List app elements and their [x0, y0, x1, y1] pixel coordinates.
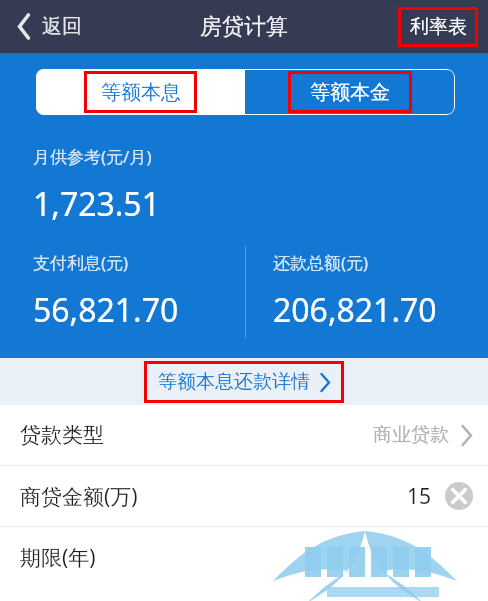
staticText: 返回 — [42, 14, 82, 39]
staticText: 等额本金 — [310, 80, 390, 105]
staticText: 等额本息还款详情 — [158, 370, 310, 394]
staticText: 15 — [407, 482, 432, 511]
staticText: 房贷计算 — [200, 13, 288, 41]
button[interactable]: 等额本息 — [36, 69, 245, 115]
staticText: 期限(年) — [20, 543, 96, 572]
button[interactable]: 清除 — [444, 481, 474, 511]
button[interactable]: 商贷金额(万) — [0, 466, 488, 526]
button[interactable]: 等额本息还款详情 — [0, 358, 488, 405]
button[interactable]: 期限(年) — [0, 527, 488, 587]
staticText: 56,821.70 — [33, 288, 179, 332]
staticText: 支付利息(元) — [33, 251, 129, 274]
staticText: 商贷金额(万) — [20, 482, 138, 511]
staticText: 贷款类型 — [20, 422, 104, 448]
staticText: 月供参考(元/月) — [33, 145, 152, 168]
button[interactable]: 利率表 — [398, 7, 478, 47]
staticText: 1,723.51 — [33, 182, 160, 226]
button[interactable]: 返回 — [12, 6, 88, 47]
button[interactable]: 等额本金 — [245, 69, 455, 115]
staticText: 商业贷款 — [373, 423, 449, 447]
staticText: 等额本息 — [101, 80, 181, 105]
staticText: 利率表 — [410, 15, 467, 39]
button[interactable]: 贷款类型 — [0, 405, 488, 465]
staticText: 206,821.70 — [273, 288, 437, 332]
staticText: 还款总额(元) — [273, 251, 369, 274]
